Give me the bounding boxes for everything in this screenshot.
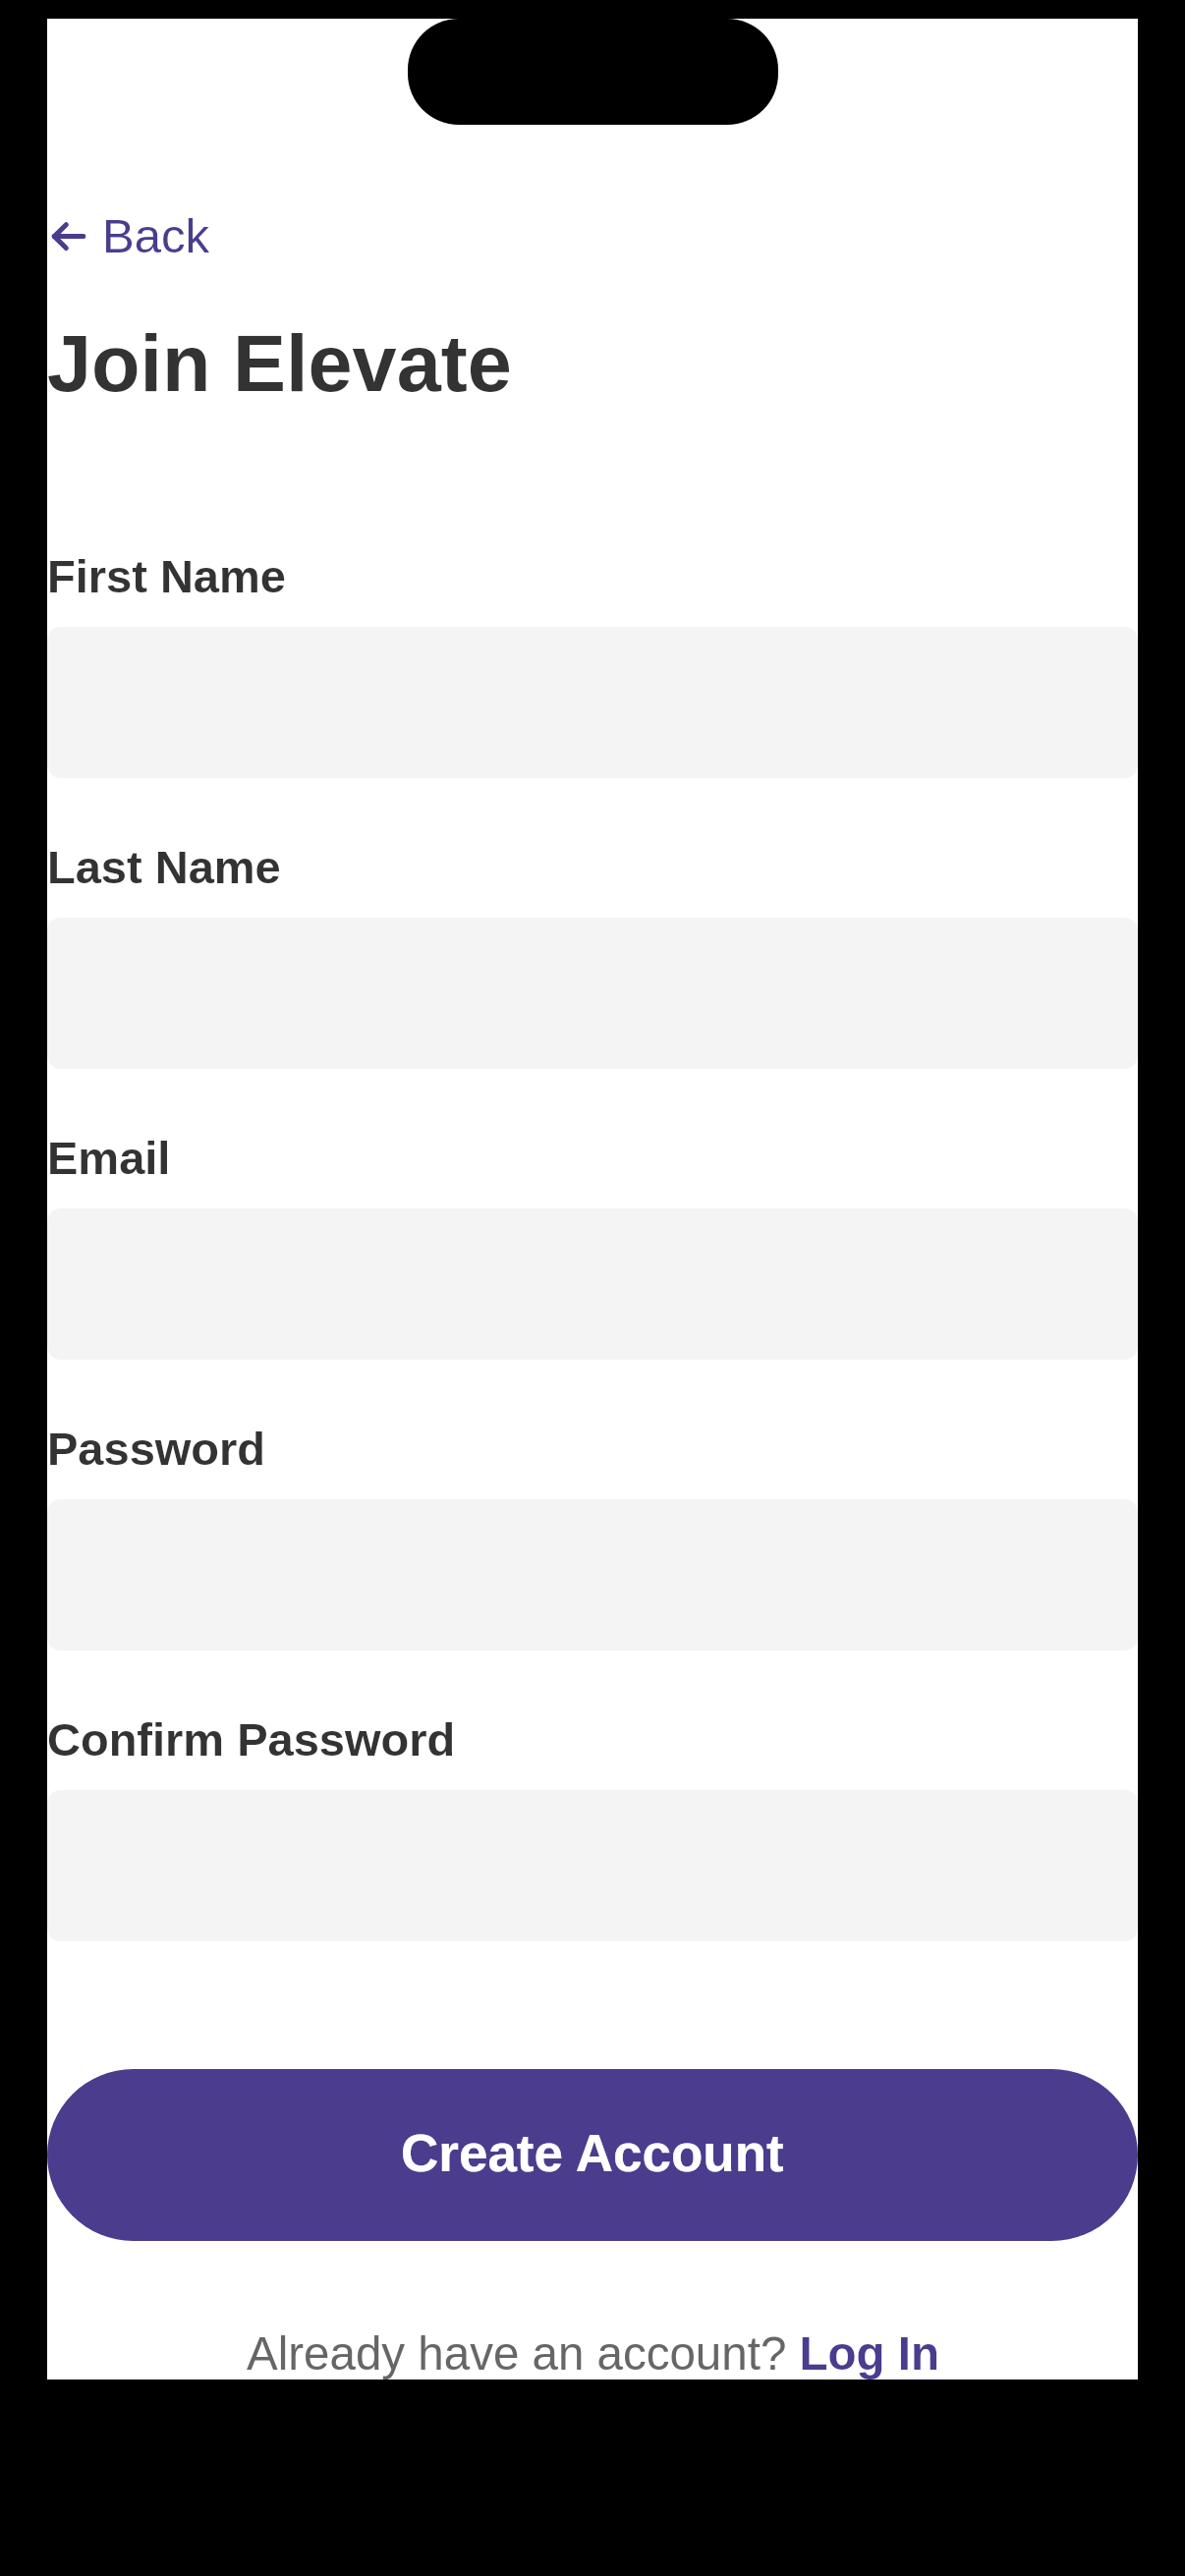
staticText: Already have an account? Log In: [247, 2327, 939, 2380]
button[interactable]: Create Account: [47, 2069, 1138, 2241]
staticText: Back: [102, 209, 209, 263]
staticText: Confirm Password: [47, 1713, 456, 1765]
button[interactable]: Last Name: [47, 918, 1138, 1069]
staticText: Last Name: [47, 841, 281, 893]
button[interactable]: Confirm Password: [47, 1790, 1138, 1941]
button[interactable]: Email: [47, 1208, 1138, 1360]
staticText: Password: [47, 1423, 266, 1475]
button[interactable]: Password: [47, 1499, 1138, 1651]
staticText: Join Elevate: [47, 319, 512, 408]
staticText: Email: [47, 1132, 171, 1184]
button[interactable]: First Name: [47, 627, 1138, 778]
staticText: Create Account: [401, 2124, 784, 2182]
button[interactable]: Already have an account? Log In: [47, 2327, 1138, 2396]
staticText: First Name: [47, 550, 286, 602]
button[interactable]: Back: [47, 205, 214, 284]
